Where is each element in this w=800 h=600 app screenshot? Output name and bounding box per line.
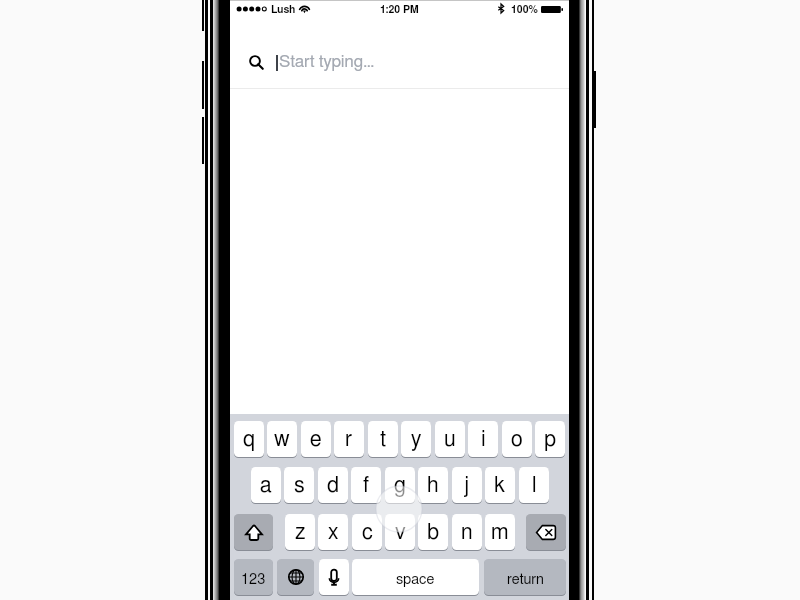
staticText: i [481,429,486,451]
button[interactable]: y [401,421,431,457]
other: Backspace [536,525,556,540]
button[interactable]: Backspace [526,514,566,550]
other: Shift [245,525,263,540]
button[interactable]: l [519,467,549,503]
staticText: a [260,475,272,497]
button[interactable]: Search [230,20,569,89]
button[interactable]: Dictate [319,559,349,595]
button[interactable]: u [435,421,465,457]
button[interactable]: d [318,467,348,503]
staticText: 100% [511,5,538,16]
staticText: y [411,429,422,451]
button[interactable]: j [452,467,482,503]
button[interactable]: s [284,467,314,503]
staticText: 123 [241,572,266,587]
staticText: k [494,475,506,497]
button[interactable]: p [535,421,565,457]
other: Dictate [329,569,339,586]
button[interactable]: 123 [234,559,273,595]
button[interactable]: b [418,514,448,550]
button[interactable]: space [352,559,479,595]
button[interactable]: k [485,467,515,503]
button[interactable]: m [485,514,515,550]
staticText: u [444,429,456,451]
button[interactable]: Shift [234,514,273,550]
staticText: c [362,522,373,544]
button[interactable]: e [301,421,331,457]
staticText: d [327,475,340,497]
staticText: h [427,475,439,497]
staticText: g [394,475,406,497]
button[interactable]: g [385,467,415,503]
staticText: b [427,522,440,544]
button[interactable]: c [352,514,382,550]
staticText: x [328,522,339,544]
button[interactable]: h [418,467,448,503]
staticText: space [396,572,435,587]
staticText: Lush [271,5,296,16]
staticText: z [295,522,306,544]
staticText: q [243,429,256,451]
button[interactable]: n [452,514,482,550]
staticText: p [544,429,557,451]
button[interactable]: r [334,421,364,457]
staticText: o [511,429,523,451]
staticText: return [507,572,544,587]
other: Wi-Fi [299,4,310,13]
staticText: j [464,475,470,497]
button[interactable]: v [385,514,415,550]
button[interactable]: Switch keyboard [277,559,314,595]
staticText: w [274,429,290,451]
button[interactable]: w [267,421,297,457]
other: Search [249,55,265,71]
staticText: s [294,475,305,497]
staticText: n [461,522,473,544]
button[interactable]: o [502,421,532,457]
button[interactable]: f [351,467,381,503]
staticText: Start typing… [279,53,375,70]
staticText: f [363,475,370,497]
staticText: m [491,522,509,544]
staticText: t [380,429,387,451]
staticText: l [532,475,537,497]
button[interactable]: q [234,421,264,457]
button[interactable]: t [368,421,398,457]
button[interactable]: z [285,514,315,550]
staticText: v [395,522,406,544]
other: Switch keyboard [288,569,304,585]
button[interactable]: return [484,559,566,595]
staticText: r [345,429,353,451]
button[interactable]: i [468,421,498,457]
button[interactable]: x [318,514,348,550]
staticText: 1:20 PM [380,5,419,16]
button[interactable]: a [251,467,281,503]
staticText: e [310,429,322,451]
